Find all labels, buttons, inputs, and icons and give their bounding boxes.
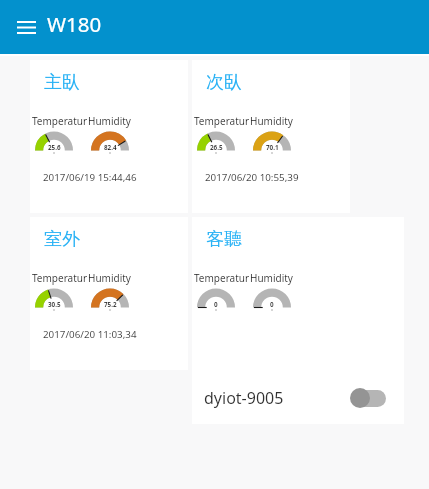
staticText: Humidity [88,271,131,285]
staticText: 0 [214,300,218,309]
staticText: 70.1 [266,143,279,152]
staticText: W180 [47,10,102,38]
button[interactable]: 客聽 [192,217,404,424]
staticText: 25.6 [48,143,61,152]
button[interactable]: dyiot-9005 [192,372,404,424]
button[interactable]: Menu [13,14,39,40]
button[interactable]: 室外 [30,217,188,370]
staticText: 2017/06/20 10:55,39 [205,171,299,184]
button[interactable]: Toggle dyiot-9005 [350,388,386,408]
staticText: 2017/06/19 15:44,46 [43,171,137,184]
staticText: 客聽 [206,228,242,251]
staticText: Humidity [250,271,293,285]
staticText: 次臥 [206,71,242,94]
staticText: 82.4 [104,143,117,152]
staticText: 0 [270,300,274,309]
staticText: Temperature [32,114,87,128]
staticText: Temperature [32,271,87,285]
staticText: 主臥 [44,71,80,94]
button[interactable]: 次臥 [192,60,350,213]
staticText: 30.5 [48,300,61,309]
staticText: 室外 [44,228,80,251]
staticText: Humidity [250,114,293,128]
staticText: 75.2 [104,300,117,309]
staticText: 26.5 [210,143,223,152]
staticText: Temperature [194,114,249,128]
staticText: Temperature [194,271,249,285]
staticText: Humidity [88,114,131,128]
button[interactable]: 主臥 [30,60,188,213]
staticText: dyiot-9005 [204,387,284,409]
staticText: 2017/06/20 11:03,34 [43,328,137,341]
